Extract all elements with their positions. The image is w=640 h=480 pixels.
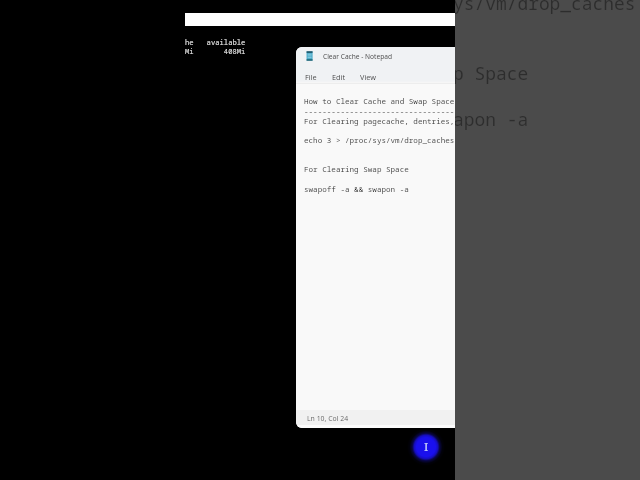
staticText: View [360, 72, 376, 82]
staticText: swapoff -a && swapon -a [304, 184, 409, 194]
staticText: Clear Cache - Notepad [323, 52, 393, 61]
staticText: File [305, 72, 317, 82]
button[interactable]: Edit [331, 71, 347, 83]
staticText: Ln 10, Col 24 [307, 414, 349, 423]
button[interactable]: View [359, 71, 377, 83]
button[interactable]: Text editor [296, 84, 455, 411]
staticText: For Clearing pagecache, dentries, and in… [304, 116, 455, 126]
staticText: Mi 408Mi [185, 46, 246, 56]
staticText: apon -a [453, 107, 529, 131]
staticText: he available [185, 37, 246, 47]
staticText: p Space [453, 61, 529, 85]
staticText: ---------------------------------------- [304, 106, 455, 116]
other: Mouse pointer [407, 428, 445, 466]
staticText: ys/vm/drop_caches [453, 0, 636, 15]
staticText: Edit [332, 72, 346, 82]
staticText: For Clearing Swap Space [304, 164, 409, 174]
staticText: How to Clear Cache and Swap Space [304, 96, 455, 106]
staticText: echo 3 > /proc/sys/vm/drop_caches [304, 135, 455, 145]
button[interactable]: File [304, 71, 318, 83]
staticText: I [424, 439, 429, 455]
